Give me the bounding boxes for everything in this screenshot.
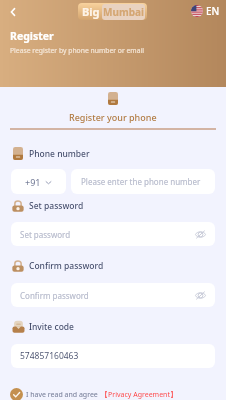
staticText: Register your phone <box>69 111 157 123</box>
staticText: Register <box>10 29 54 43</box>
button[interactable]: Show password <box>194 228 206 240</box>
button[interactable]: +91 <box>11 169 66 194</box>
staticText: Invite code <box>29 321 74 333</box>
button[interactable]: Show password <box>194 289 206 301</box>
staticText: I have read and agree <box>26 390 98 400</box>
button[interactable]: Set password <box>11 222 215 246</box>
button[interactable]: Register your phone <box>69 111 157 123</box>
staticText: Please register by phone number or email <box>10 46 145 55</box>
staticText: Phone number <box>29 148 90 160</box>
staticText: 574857160463 <box>20 350 79 362</box>
staticText: +91 <box>25 176 41 188</box>
staticText: Please enter the phone number <box>81 176 201 187</box>
button[interactable]: Confirm password <box>11 283 215 307</box>
button[interactable]: Back <box>4 3 22 21</box>
staticText: Confirm password <box>29 260 104 272</box>
staticText: Set password <box>20 229 71 240</box>
staticText: Set password <box>29 200 84 212</box>
staticText: EN <box>206 4 220 18</box>
staticText: Confirm password <box>20 290 89 301</box>
button[interactable]: I have read and agree <box>10 388 177 400</box>
staticText: 【Privacy Agreement】 <box>101 390 177 400</box>
staticText: Big <box>82 4 100 19</box>
staticText: Mumbai <box>103 5 144 19</box>
button[interactable]: 574857160463 <box>11 344 215 368</box>
button[interactable]: EN <box>191 4 220 18</box>
button[interactable]: Please enter the phone number <box>71 169 215 194</box>
